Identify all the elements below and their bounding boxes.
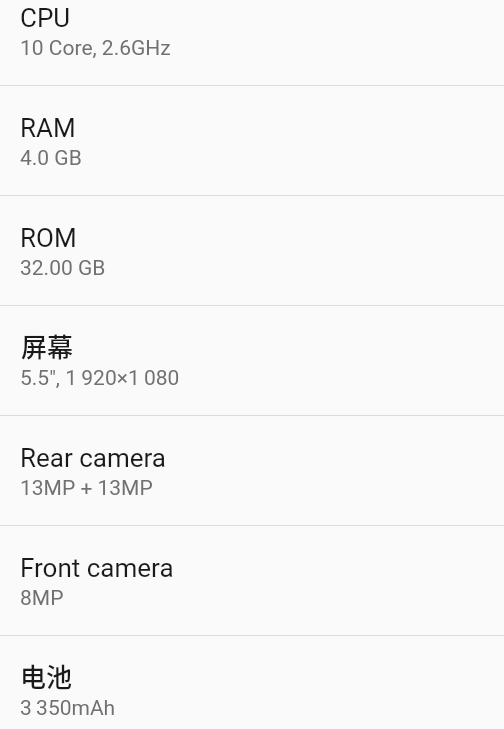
staticText: 屏幕 [21,327,74,365]
button[interactable]: CPU [0,0,504,85]
staticText: Front camera [20,553,174,583]
staticText: Rear camera [20,443,166,473]
button[interactable]: Rear camera [0,415,504,525]
button[interactable]: ROM [0,195,504,305]
button[interactable]: 电池 [0,635,504,729]
staticText: CPU [20,3,71,33]
staticText: 13MP + 13MP [20,476,153,501]
staticText: RAM [20,113,76,143]
staticText: 4.0 GB [20,146,82,171]
staticText: 3 350mAh [20,696,116,721]
staticText: 8MP [20,586,64,611]
button[interactable]: Front camera [0,525,504,635]
staticText: 10 Core, 2.6GHz [20,36,171,61]
button[interactable]: 屏幕 [0,305,504,415]
staticText: 32.00 GB [20,256,106,281]
staticText: ROM [20,223,77,253]
staticText: 电池 [20,657,73,695]
staticText: 5.5", 1 920×1 080 [20,366,180,391]
button[interactable]: RAM [0,85,504,195]
